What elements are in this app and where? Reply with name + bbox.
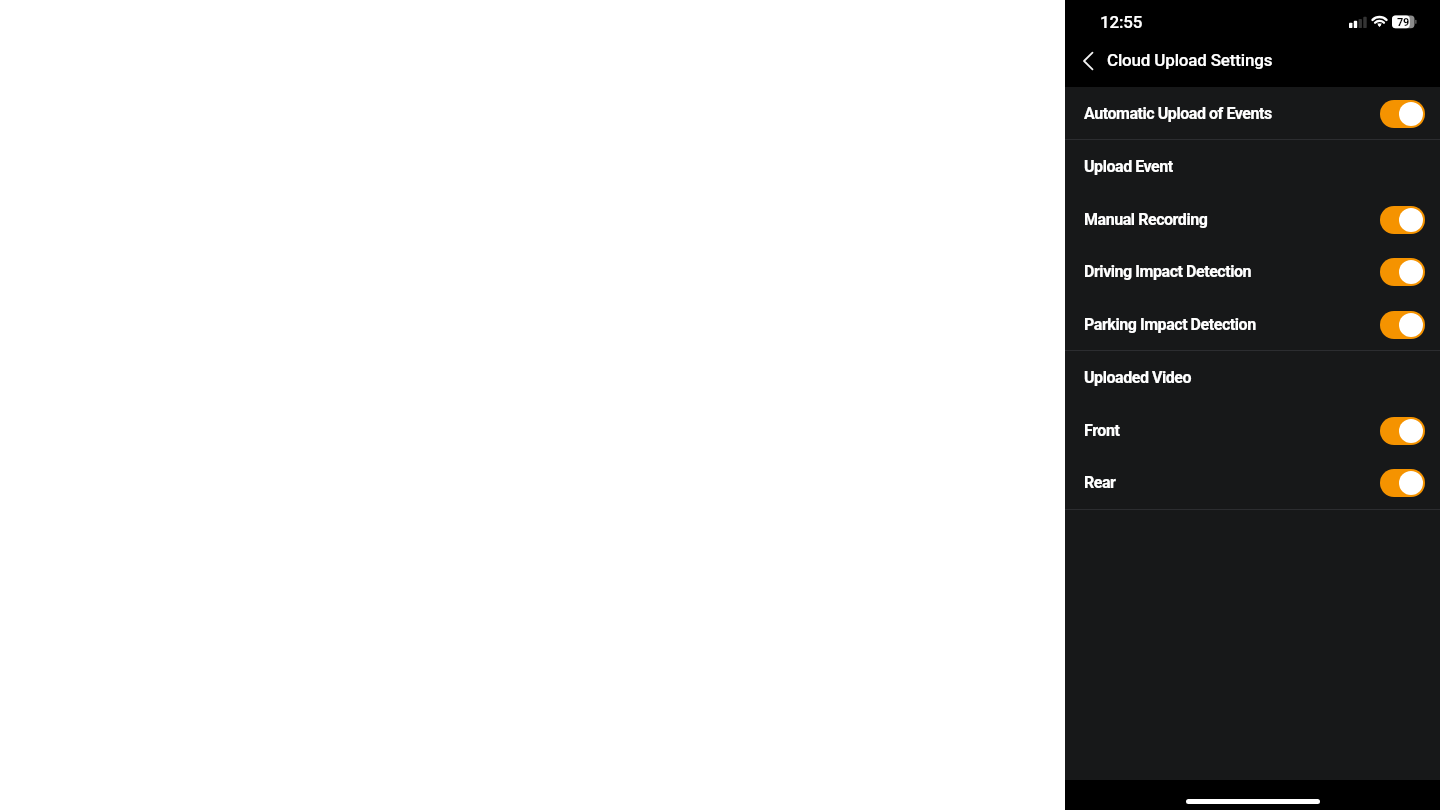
button[interactable]: Automatic Upload of Events, on (1380, 100, 1425, 128)
staticText: Rear (1084, 473, 1380, 492)
staticText: Parking Impact Detection (1084, 315, 1380, 334)
button[interactable]: Driving Impact Detection (1065, 245, 1440, 298)
button[interactable]: Rear (1065, 456, 1440, 509)
button[interactable]: Front, on (1380, 417, 1425, 445)
staticText: Front (1084, 421, 1380, 440)
button[interactable]: Parking Impact Detection (1065, 298, 1440, 351)
staticText: Driving Impact Detection (1084, 262, 1380, 281)
staticText: 79 (1397, 16, 1410, 29)
staticText: Automatic Upload of Events (1084, 104, 1380, 123)
button[interactable]: Rear, on (1380, 469, 1425, 497)
staticText: Upload Event (1084, 157, 1173, 176)
button[interactable]: Driving Impact Detection, on (1380, 258, 1425, 286)
button[interactable]: Back (1068, 39, 1108, 82)
staticText: Manual Recording (1084, 210, 1380, 229)
button[interactable]: Front (1065, 404, 1440, 457)
button[interactable]: Manual Recording, on (1380, 206, 1425, 234)
button[interactable]: Manual Recording (1065, 193, 1440, 246)
button[interactable]: Automatic Upload of Events (1065, 87, 1440, 140)
staticText: 12:55 (1100, 12, 1143, 32)
button[interactable]: Parking Impact Detection, on (1380, 311, 1425, 339)
staticText: Uploaded Video (1084, 368, 1192, 387)
staticText: Cloud Upload Settings (1107, 50, 1273, 70)
